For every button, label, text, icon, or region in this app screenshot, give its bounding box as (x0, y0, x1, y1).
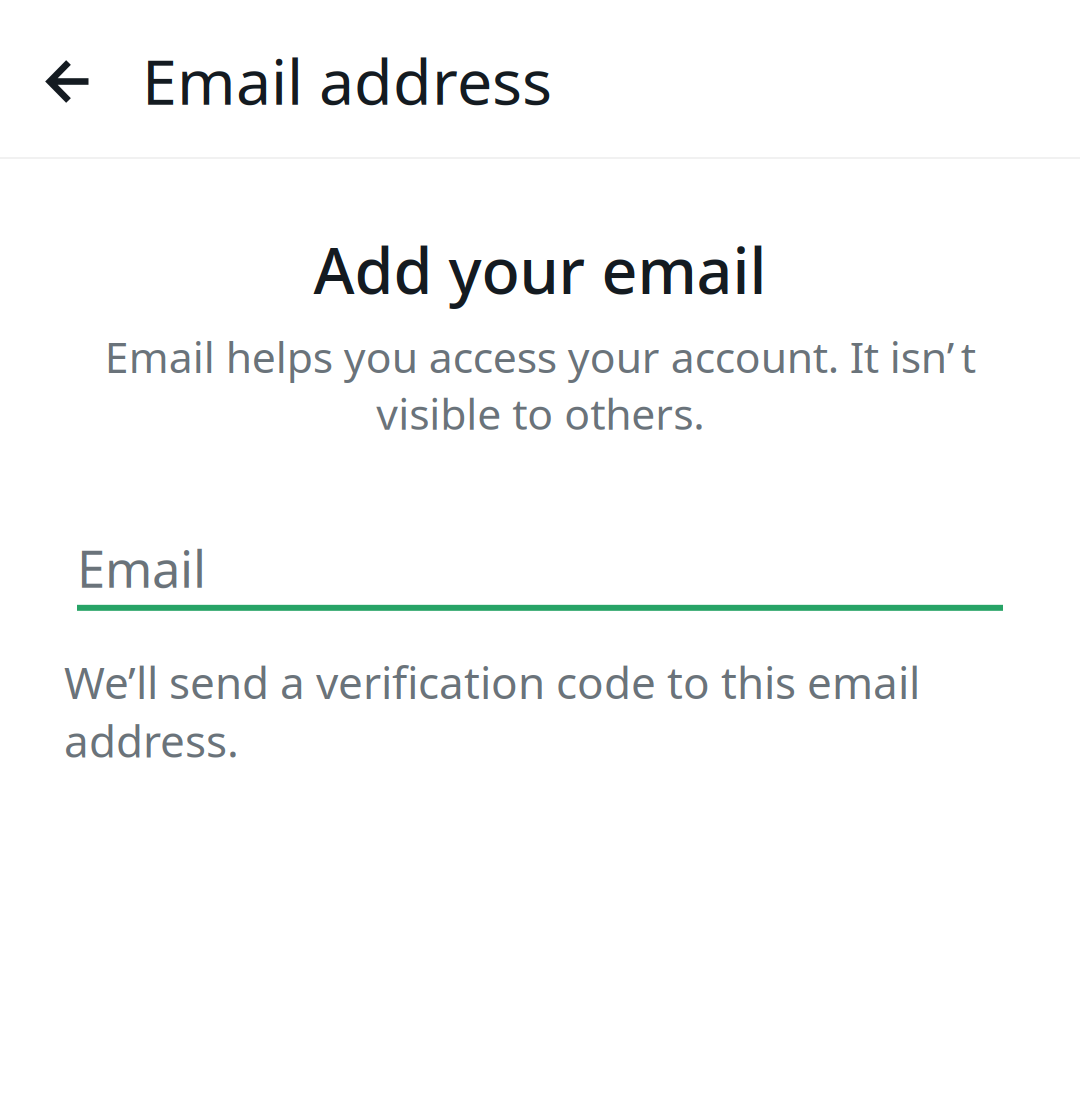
button[interactable]: Back (0, 0, 140, 157)
staticText: We’ll send a verification code to this e… (64, 653, 920, 770)
staticText: Email helps you access your account. It … (104, 328, 975, 441)
staticText: Add your email (313, 228, 766, 311)
staticText: Email (77, 534, 206, 602)
staticText: Email address (142, 39, 552, 122)
button[interactable]: Email (0, 534, 1080, 611)
